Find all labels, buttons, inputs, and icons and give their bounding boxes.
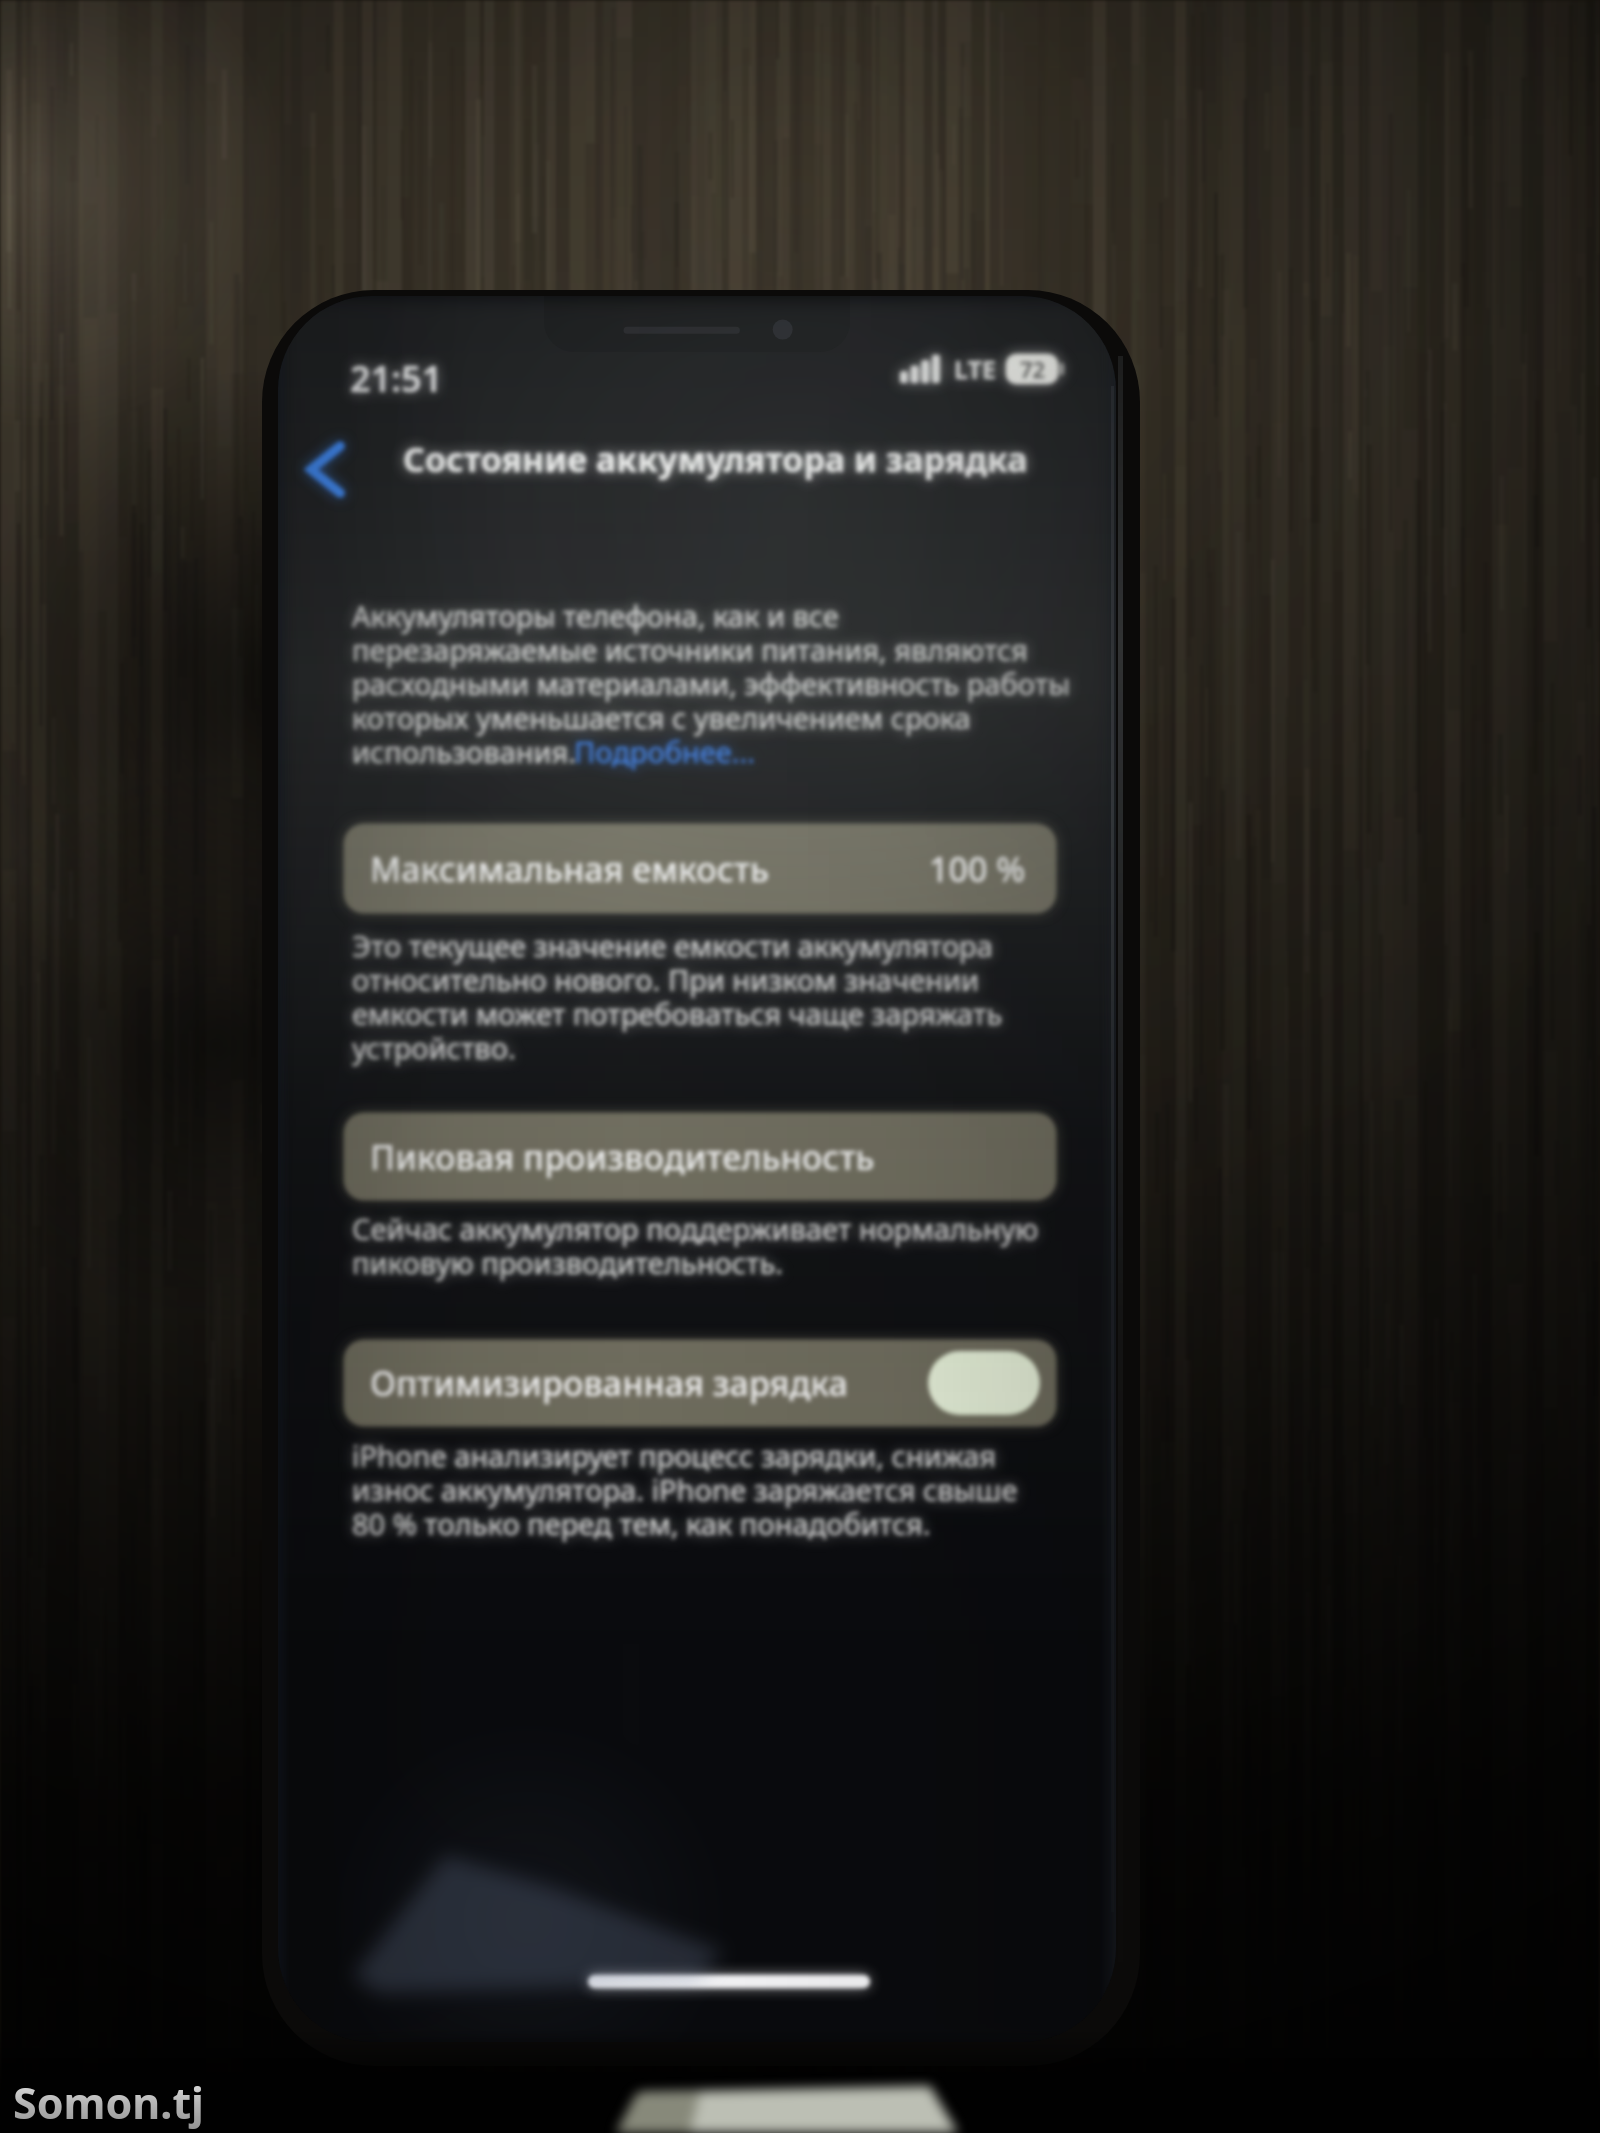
staticText: Состояние аккумулятора и зарядка — [403, 436, 1028, 482]
staticText: Это текущее значение емкости аккумулятор… — [352, 926, 1003, 1067]
staticText: 21:51 — [350, 354, 443, 403]
staticText: Подробнее... — [574, 732, 756, 771]
staticText: 72 — [1020, 354, 1046, 384]
staticText: 100 % — [929, 846, 1026, 892]
button[interactable]: Back — [280, 430, 356, 506]
button[interactable]: Подробнее... — [574, 731, 760, 771]
staticText: Это текущее значение емкости аккумулятор… — [352, 926, 1003, 1067]
button[interactable]: Optimised charging switch, on — [928, 1351, 1040, 1415]
staticText: LTE — [954, 352, 996, 386]
staticText: Пиковая производительность — [370, 1134, 875, 1180]
staticText: Состояние аккумулятора и зарядка — [403, 436, 1028, 482]
button[interactable]: Максимальная емкость — [344, 824, 1056, 913]
staticText: Аккумуляторы телефона, как и все перезар… — [352, 596, 1071, 771]
button[interactable]: Пиковая производительность — [344, 1113, 1056, 1200]
staticText: 21:51 — [350, 354, 443, 403]
button[interactable]: Back — [280, 430, 356, 506]
button[interactable]: Оптимизированная зарядка — [344, 1340, 1056, 1426]
button[interactable]: Optimised charging switch, on — [928, 1351, 1040, 1415]
staticText: 72 — [1020, 354, 1046, 384]
staticText: 100 % — [929, 846, 1026, 892]
staticText: Оптимизированная зарядка — [370, 1360, 848, 1406]
staticText: Оптимизированная зарядка — [370, 1360, 848, 1406]
staticText: LTE — [954, 352, 996, 386]
staticText: Somon.tj — [13, 2073, 204, 2132]
staticText: Максимальная емкость — [370, 846, 770, 892]
button[interactable]: Максимальная емкость — [344, 824, 1056, 913]
staticText: Подробнее... — [574, 732, 756, 771]
button[interactable]: Пиковая производительность — [344, 1113, 1056, 1200]
staticText: Максимальная емкость — [370, 846, 770, 892]
button[interactable]: Оптимизированная зарядка — [344, 1340, 1056, 1426]
button[interactable]: Подробнее... — [574, 731, 760, 771]
staticText: Аккумуляторы телефона, как и все перезар… — [352, 596, 1071, 771]
staticText: Сейчас аккумулятор поддерживает нормальн… — [352, 1209, 1039, 1282]
staticText: iPhone анализирует процесс зарядки, сниж… — [352, 1436, 1018, 1543]
staticText: Сейчас аккумулятор поддерживает нормальн… — [352, 1209, 1039, 1282]
staticText: iPhone анализирует процесс зарядки, сниж… — [352, 1436, 1018, 1543]
staticText: Пиковая производительность — [370, 1134, 875, 1180]
